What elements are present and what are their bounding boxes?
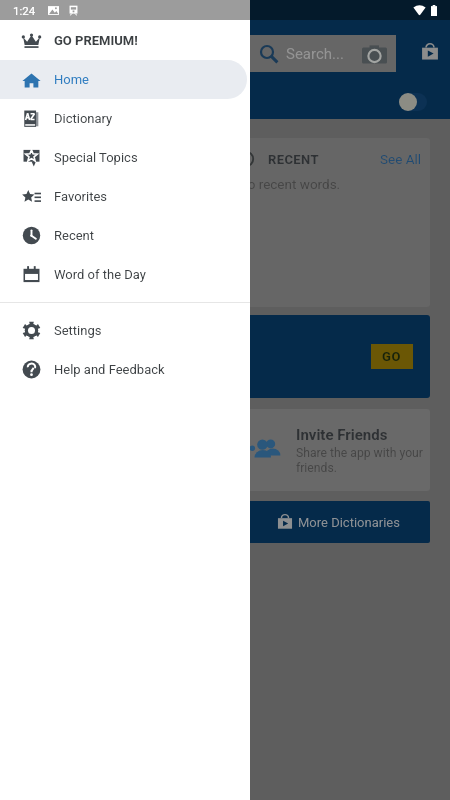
staticText: Recent: [54, 228, 95, 243]
staticText: GO: [382, 349, 402, 364]
button[interactable]: Recent: [0, 216, 247, 255]
button[interactable]: Shop dictionaries: [414, 36, 446, 68]
staticText: Search...: [286, 45, 344, 63]
staticText: Special Topics: [54, 150, 138, 165]
staticText: More Dictionaries: [298, 515, 400, 530]
staticText: Home: [54, 72, 89, 87]
button[interactable]: Favorites: [0, 177, 247, 216]
staticText: Dictionary: [54, 111, 113, 126]
staticText: Invite Friends: [296, 426, 388, 444]
button[interactable]: Search...: [250, 35, 396, 72]
staticText: See All: [380, 151, 422, 167]
button[interactable]: GO: [371, 344, 413, 369]
staticText: Share the app with your friends.: [296, 446, 423, 475]
button[interactable]: Toggle dark mode: [399, 93, 427, 111]
button[interactable]: Word of the Day: [0, 255, 247, 294]
staticText: GO PREMIUM!: [54, 33, 138, 48]
staticText: 1:24: [13, 4, 36, 17]
button[interactable]: Dictionary: [0, 99, 247, 138]
staticText: No recent words.: [238, 176, 341, 192]
button[interactable]: More Dictionaries: [223, 501, 430, 543]
staticText: Settings: [54, 323, 102, 338]
staticText: Help and Feedback: [54, 362, 165, 377]
staticText: Word of the Day: [54, 267, 146, 282]
staticText: RECENT: [268, 152, 319, 167]
button[interactable]: Special Topics: [0, 138, 247, 177]
button[interactable]: Settings: [0, 311, 247, 350]
staticText: Favorites: [54, 189, 107, 204]
button[interactable]: Help and Feedback: [0, 350, 247, 389]
button[interactable]: Home: [0, 60, 247, 99]
button[interactable]: GO PREMIUM!: [0, 21, 247, 60]
